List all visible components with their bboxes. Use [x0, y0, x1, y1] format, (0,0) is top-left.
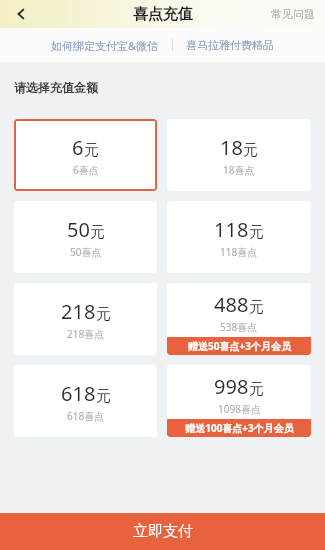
staticText: 元 — [249, 223, 264, 242]
staticText: 赠送50喜点+3个月会员 — [188, 339, 291, 353]
staticText: 喜马拉雅付费精品 — [186, 38, 274, 52]
staticText: 1098喜点 — [218, 402, 261, 416]
staticText: 元 — [249, 298, 264, 317]
button[interactable]: 998 — [167, 365, 311, 437]
staticText: 118喜点 — [220, 245, 258, 259]
button[interactable]: 6 — [14, 119, 157, 191]
staticText: 618 — [61, 380, 96, 407]
staticText: 赠送100喜点+3个月会员 — [185, 421, 294, 435]
staticText: 元 — [249, 380, 264, 399]
button[interactable]: Back — [6, 0, 38, 28]
button[interactable]: 218 — [14, 283, 157, 355]
staticText: 50喜点 — [70, 245, 102, 259]
button[interactable]: 常见问题 — [271, 0, 315, 28]
staticText: 488 — [214, 291, 249, 318]
staticText: 218 — [61, 298, 96, 325]
staticText: 6 — [72, 134, 84, 161]
button[interactable]: 立即支付 — [0, 513, 325, 550]
staticText: 18 — [220, 134, 243, 161]
staticText: 元 — [84, 141, 99, 160]
button[interactable]: 488 — [167, 283, 311, 355]
staticText: 常见问题 — [271, 7, 315, 21]
staticText: 元 — [243, 141, 258, 160]
staticText: 50 — [67, 216, 90, 243]
staticText: 998 — [214, 373, 249, 400]
staticText: 喜点充值 — [133, 5, 193, 24]
button[interactable]: 18 — [167, 119, 311, 191]
staticText: 立即支付 — [133, 522, 193, 541]
staticText: 元 — [96, 387, 111, 406]
staticText: 元 — [96, 305, 111, 324]
button[interactable]: 618 — [14, 365, 157, 437]
button[interactable]: 如何绑定支付宝&微信 — [51, 38, 159, 53]
staticText: 118 — [214, 216, 249, 243]
button[interactable]: 118 — [167, 201, 311, 273]
staticText: 618喜点 — [67, 409, 105, 423]
button[interactable]: 50 — [14, 201, 157, 273]
staticText: 218喜点 — [67, 327, 105, 341]
staticText: 538喜点 — [220, 320, 258, 334]
staticText: 元 — [90, 223, 105, 242]
staticText: 18喜点 — [223, 163, 255, 177]
button[interactable]: 喜马拉雅付费精品 — [186, 38, 274, 52]
staticText: 如何绑定支付宝&微信 — [51, 38, 159, 53]
staticText: 请选择充值金额 — [14, 80, 98, 95]
staticText: 6喜点 — [73, 163, 99, 177]
